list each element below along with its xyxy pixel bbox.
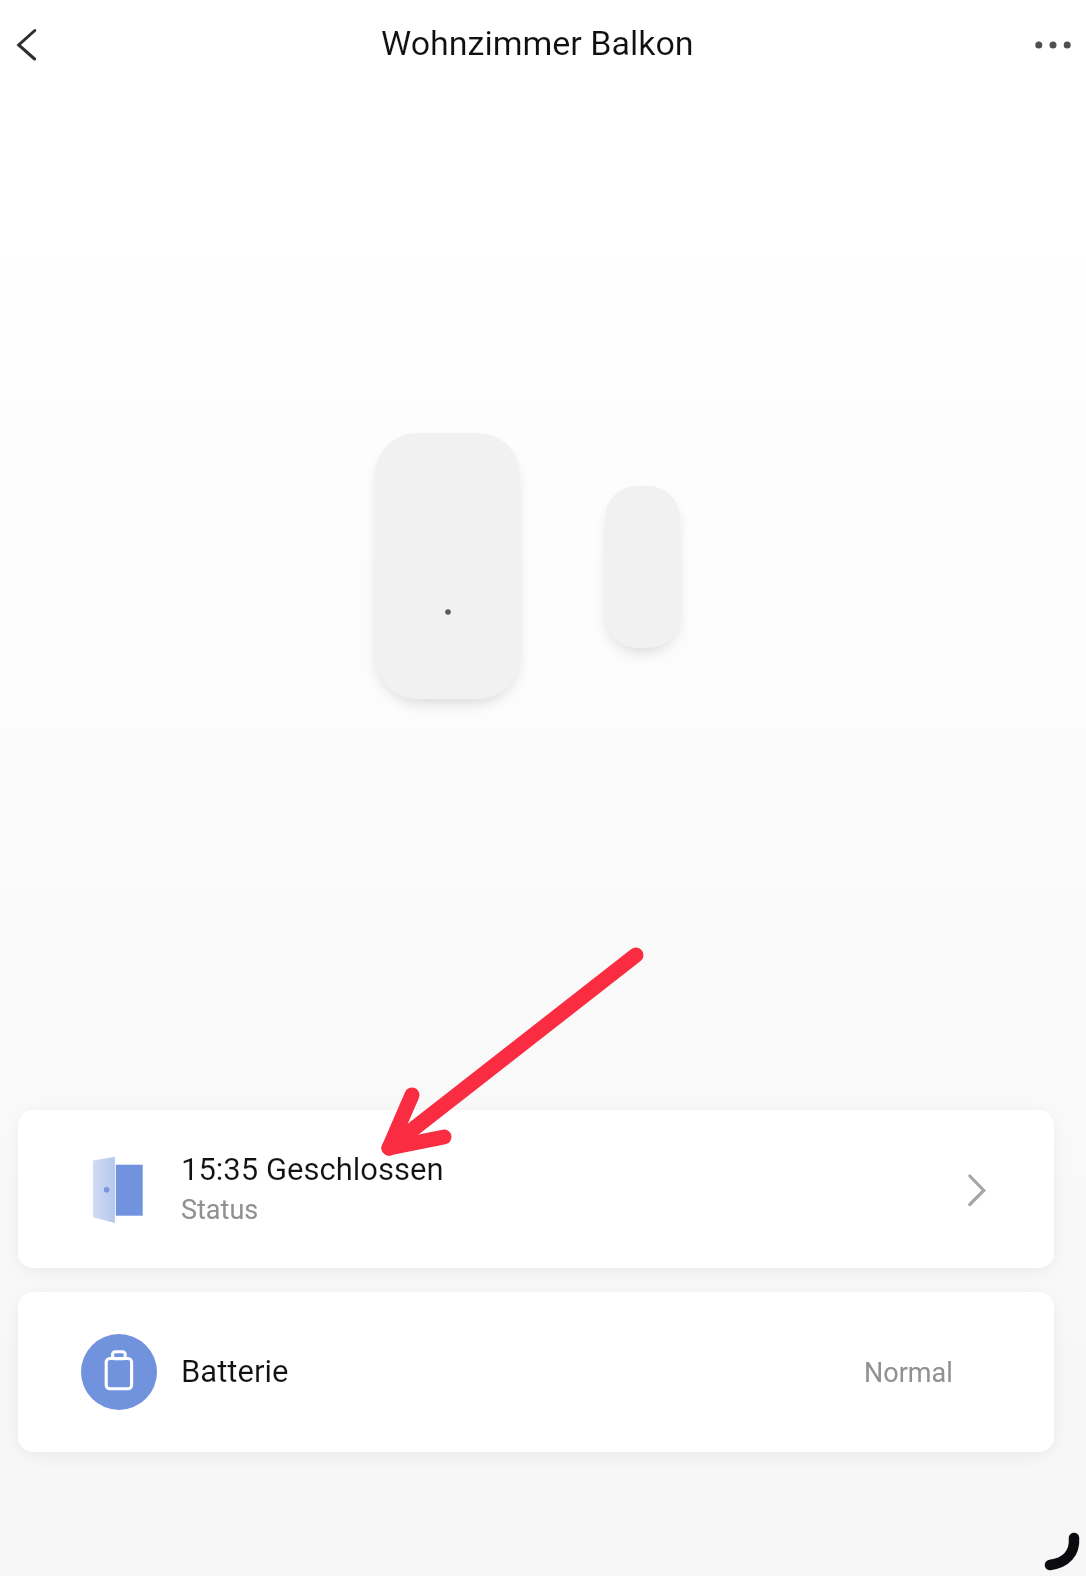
button[interactable]: 15:35 Geschlossen: [18, 1110, 1054, 1268]
staticText: Wohnzimmer Balkon: [381, 23, 694, 63]
button[interactable]: Back: [0, 12, 58, 76]
staticText: 15:35 Geschlossen: [181, 1151, 444, 1187]
staticText: Normal: [864, 1357, 953, 1389]
staticText: Batterie: [181, 1353, 289, 1389]
button[interactable]: Batterie: [18, 1292, 1054, 1452]
button[interactable]: More options: [1021, 13, 1085, 77]
staticText: Status: [181, 1194, 259, 1226]
